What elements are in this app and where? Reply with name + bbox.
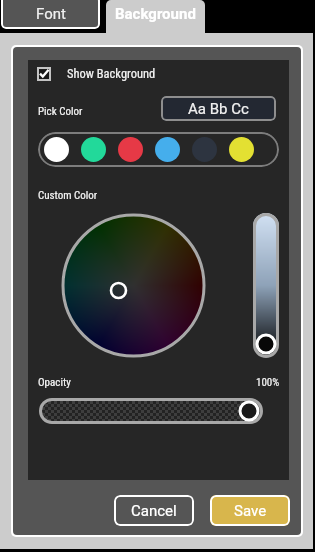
button[interactable]: Colour option 6 bbox=[229, 137, 254, 162]
button[interactable]: Brightness slider bbox=[253, 213, 279, 358]
button[interactable]: Colour option 5 bbox=[192, 137, 217, 162]
button[interactable]: Aa Bb Cc bbox=[161, 96, 276, 121]
staticText: Background bbox=[115, 5, 196, 23]
button[interactable]: Background bbox=[106, 0, 205, 33]
button[interactable]: Font bbox=[1, 0, 100, 29]
button[interactable]: Colour option 3 bbox=[118, 137, 143, 162]
staticText: Show Background bbox=[67, 66, 156, 81]
staticText: Custom Color bbox=[38, 189, 98, 202]
staticText: Aa Bb Cc bbox=[188, 100, 249, 118]
staticText: Font bbox=[36, 5, 66, 23]
button[interactable]: Colour option 4 bbox=[155, 137, 180, 162]
staticText: Save bbox=[234, 502, 267, 520]
button[interactable]: Cancel bbox=[114, 495, 194, 526]
staticText: Pick Color bbox=[38, 105, 83, 118]
staticText: 100% bbox=[256, 376, 280, 389]
staticText: Opacity bbox=[38, 376, 71, 389]
button[interactable]: Save bbox=[210, 495, 290, 526]
button[interactable]: Opacity slider bbox=[39, 398, 263, 424]
button[interactable]: Colour option 2 bbox=[81, 137, 106, 162]
button[interactable]: Colour option 1 bbox=[44, 137, 69, 162]
button[interactable]: Show Background bbox=[37, 66, 156, 81]
button[interactable]: Custom colour wheel bbox=[61, 213, 206, 358]
staticText: Cancel bbox=[131, 502, 177, 520]
